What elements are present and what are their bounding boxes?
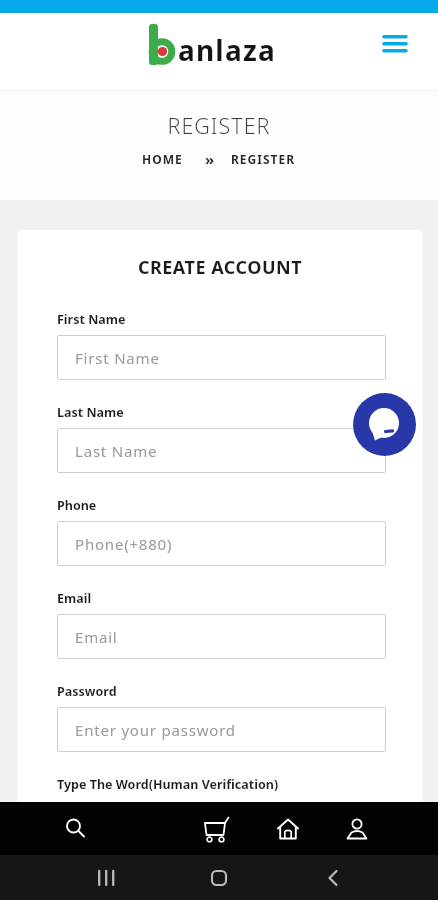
button[interactable]: Email [57,614,386,659]
button[interactable] [192,802,240,855]
staticText: REGISTER [0,111,438,140]
staticText: Password [57,683,117,700]
button[interactable]: HOME [142,151,183,167]
staticText: Email [75,627,118,647]
staticText: Email [57,590,92,607]
button[interactable] [264,802,312,855]
staticText: REGISTER [231,151,296,167]
staticText: Phone(+880) [75,534,173,554]
button[interactable] [197,855,241,900]
staticText: » [205,149,215,169]
button[interactable]: First Name [57,335,386,380]
button[interactable]: Last Name [57,428,386,473]
button[interactable] [333,802,381,855]
button[interactable] [52,802,100,855]
staticText: CREATE ACCOUNT [17,255,423,280]
button[interactable]: Phone(+880) [57,521,386,566]
button[interactable] [353,393,416,456]
staticText: Type The Word(Human Verification) [57,776,279,793]
staticText: Last Name [57,404,124,421]
staticText: anlaza [178,31,276,69]
button[interactable] [84,855,128,900]
button[interactable] [311,855,355,900]
staticText: Enter your password [75,720,236,740]
staticText: First Name [57,311,126,328]
staticText: Phone [57,497,97,514]
button[interactable]: Enter your password [57,707,386,752]
button[interactable] [374,26,416,62]
staticText: Last Name [75,441,158,461]
staticText: First Name [75,348,160,368]
